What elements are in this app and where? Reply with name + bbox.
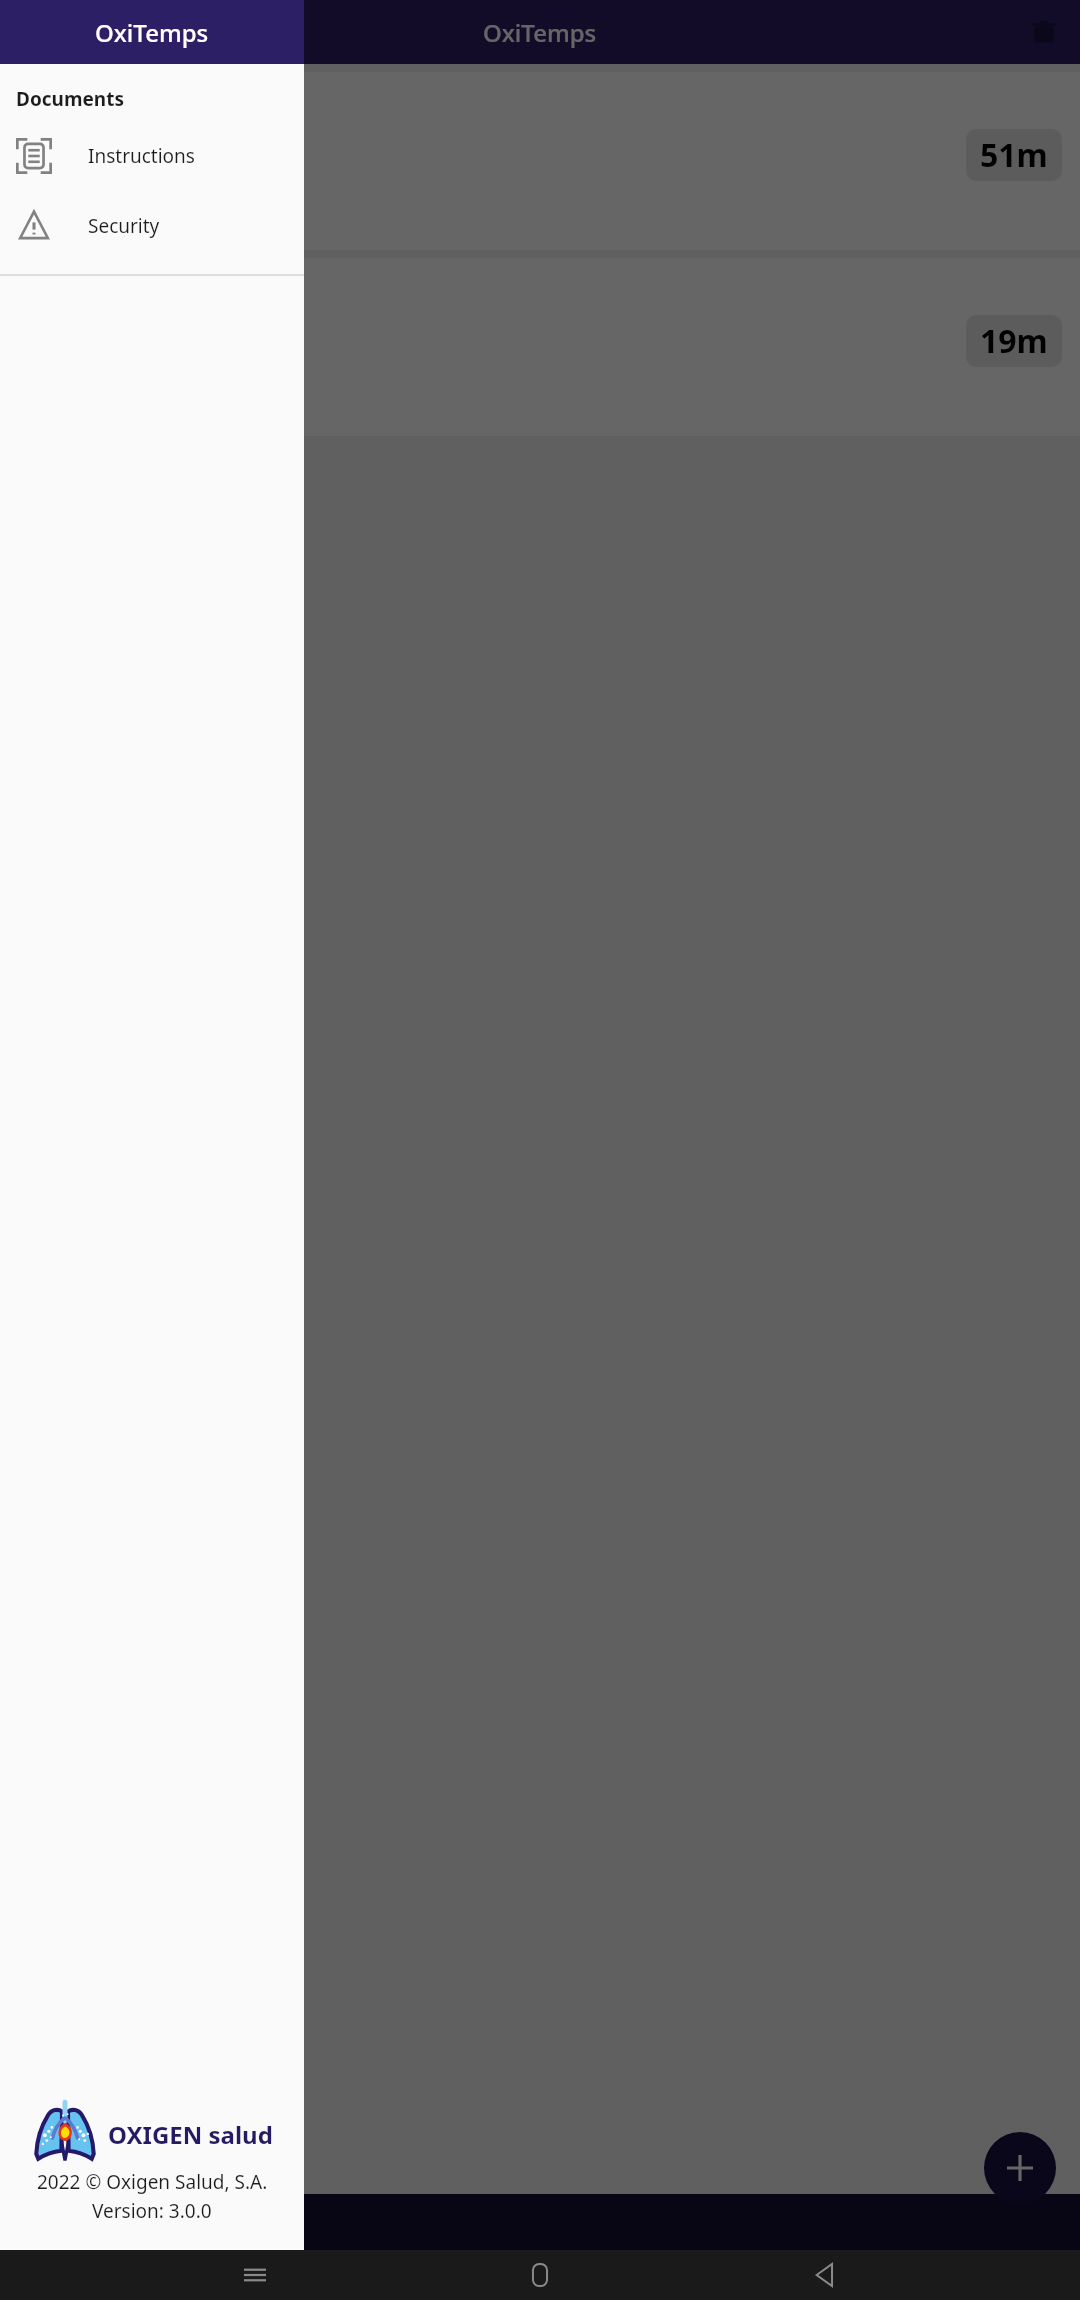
button[interactable]: Instructions bbox=[0, 132, 304, 180]
button[interactable]: Recents bbox=[225, 2250, 285, 2300]
staticText: 51m bbox=[980, 133, 1048, 177]
button[interactable]: Back bbox=[795, 2250, 855, 2300]
button[interactable]: Autonomy bbox=[0, 258, 1080, 436]
staticText: OXIGEN salud bbox=[108, 2118, 273, 2151]
staticText: OxiTemps bbox=[95, 16, 209, 49]
staticText: 19m bbox=[980, 319, 1048, 363]
staticText: OxiTemps bbox=[483, 16, 597, 49]
staticText: Autonomy bbox=[18, 84, 121, 113]
button[interactable]: Delete bbox=[1020, 8, 1068, 56]
button[interactable]: Home bbox=[510, 2250, 570, 2300]
button[interactable]: Autonomy bbox=[0, 72, 1080, 250]
staticText: Documents bbox=[16, 86, 124, 112]
button[interactable]: Security bbox=[0, 202, 304, 250]
staticText: Instructions bbox=[88, 143, 195, 169]
staticText: Version: 3.0.0 bbox=[92, 2198, 212, 2224]
staticText: Autonomy bbox=[18, 270, 121, 299]
button[interactable]: Add bbox=[984, 2132, 1056, 2204]
staticText: Security bbox=[88, 213, 160, 239]
staticText: 2022 © Oxigen Salud, S.A. bbox=[37, 2169, 268, 2195]
